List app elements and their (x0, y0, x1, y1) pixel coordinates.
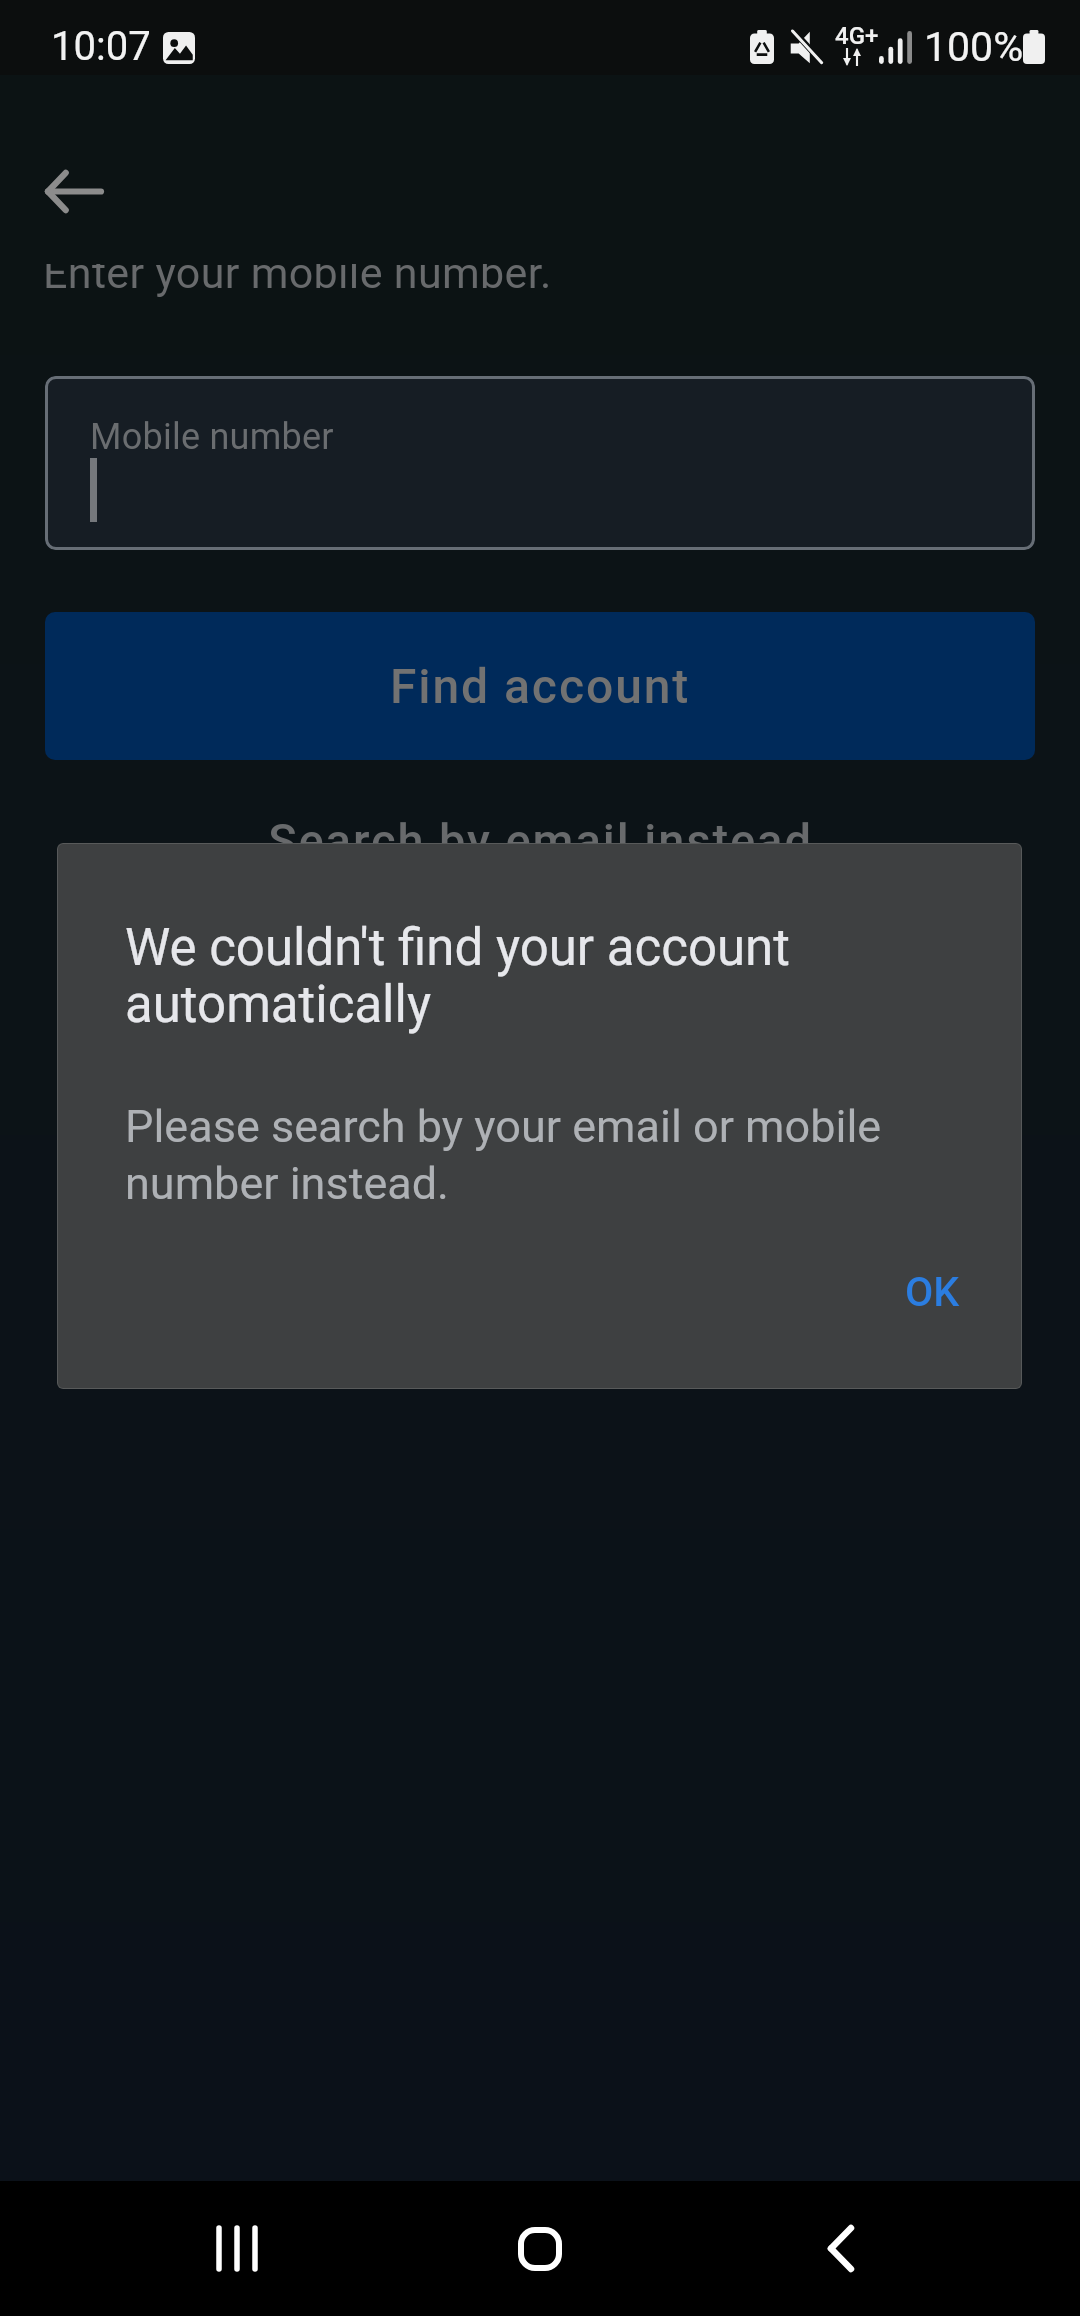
button[interactable]: Home (469, 2181, 611, 2316)
staticText: Search by email instead (268, 813, 813, 868)
staticText: Enter your mobile number. (43, 264, 552, 298)
button[interactable]: OK (881, 1254, 984, 1330)
staticText: Mobile number (90, 416, 334, 458)
button[interactable]: Mobile number (45, 376, 1035, 550)
staticText: 10:07 (51, 23, 151, 70)
staticText: OK (905, 1268, 960, 1316)
staticText: Find account (390, 658, 691, 714)
button[interactable]: Recent apps (166, 2181, 308, 2316)
button[interactable]: Find account (45, 612, 1035, 760)
button[interactable]: Search by email instead (0, 813, 1080, 903)
button[interactable]: Navigate up (24, 143, 120, 239)
staticText: We couldn't find your account automatica… (125, 918, 865, 1035)
staticText: 4G+ (835, 22, 879, 50)
staticText: Please search by your email or mobile nu… (125, 1100, 915, 1210)
staticText: 100% (924, 23, 1024, 71)
button[interactable]: Back (772, 2181, 914, 2316)
